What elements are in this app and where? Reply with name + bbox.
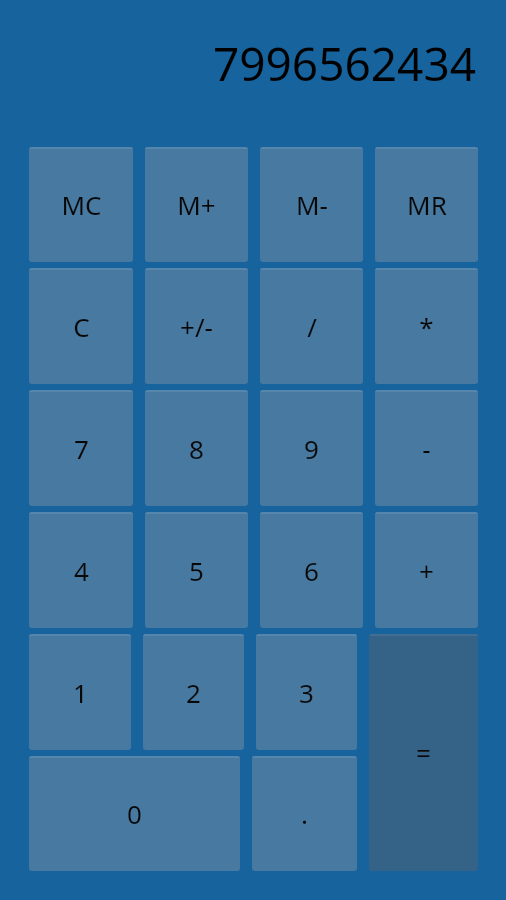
button[interactable]: C [29, 268, 133, 384]
staticText: 2 [186, 675, 201, 710]
button[interactable]: 4 [29, 512, 133, 628]
button[interactable]: M+ [145, 147, 248, 262]
staticText: 1 [73, 675, 88, 710]
button[interactable]: M- [260, 147, 363, 262]
staticText: + [419, 553, 434, 588]
button[interactable]: / [260, 268, 363, 384]
staticText: 7996562434 [212, 32, 476, 95]
staticText: * [419, 309, 434, 344]
staticText: 4 [74, 553, 89, 588]
button[interactable]: 8 [145, 390, 248, 506]
button[interactable]: 5 [145, 512, 248, 628]
staticText: 3 [299, 675, 314, 710]
button[interactable]: MR [375, 147, 478, 262]
staticText: = [416, 735, 431, 770]
button[interactable]: 6 [260, 512, 363, 628]
button[interactable]: 0 [29, 756, 240, 871]
button[interactable]: * [375, 268, 478, 384]
staticText: M- [296, 187, 328, 222]
staticText: 7 [74, 431, 89, 466]
staticText: 9 [304, 431, 319, 466]
button[interactable]: 7996562434 [0, 0, 506, 147]
staticText: - [422, 431, 431, 466]
button[interactable]: 2 [143, 634, 244, 750]
button[interactable]: 3 [256, 634, 357, 750]
button[interactable]: - [375, 390, 478, 506]
staticText: 5 [189, 553, 204, 588]
staticText: . [301, 796, 308, 831]
button[interactable]: 9 [260, 390, 363, 506]
staticText: M+ [177, 187, 216, 222]
button[interactable]: +/- [145, 268, 248, 384]
button[interactable]: = [369, 634, 478, 871]
button[interactable]: 7 [29, 390, 133, 506]
staticText: 8 [189, 431, 204, 466]
staticText: 6 [304, 553, 319, 588]
staticText: +/- [180, 309, 213, 344]
staticText: MR [407, 187, 447, 222]
button[interactable]: MC [29, 147, 133, 262]
staticText: MC [61, 187, 102, 222]
staticText: C [73, 309, 90, 344]
staticText: 0 [127, 796, 142, 831]
button[interactable]: + [375, 512, 478, 628]
button[interactable]: 1 [29, 634, 131, 750]
button[interactable]: . [252, 756, 357, 871]
staticText: / [307, 309, 317, 344]
